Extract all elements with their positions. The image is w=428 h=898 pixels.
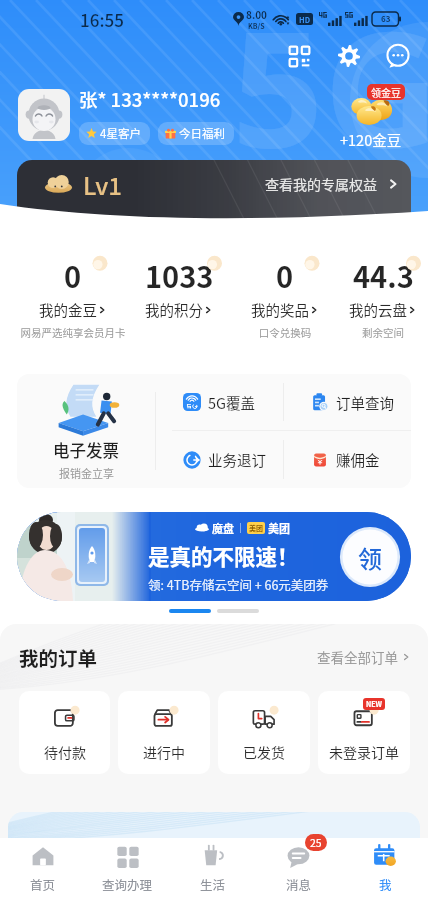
button[interactable]: 查看全部订单: [317, 647, 411, 667]
button[interactable]: 5G覆盖: [156, 374, 283, 430]
staticText: 查看我的专属权益: [265, 174, 377, 194]
button[interactable]: 电子发票: [17, 374, 155, 488]
staticText: 63: [381, 13, 391, 25]
staticText: NEW: [366, 699, 382, 709]
button[interactable]: 0: [20, 254, 126, 340]
staticText: 已发货: [243, 742, 285, 762]
staticText: HD: [299, 14, 311, 25]
button[interactable]: 业务退订: [156, 431, 283, 488]
button[interactable]: 4星客户: [79, 122, 150, 145]
button[interactable]: Settings: [331, 38, 367, 74]
staticText: 我的金豆: [39, 299, 97, 320]
staticText: 首页: [30, 875, 56, 893]
button[interactable]: 赚佣金: [284, 431, 411, 488]
button[interactable]: 待付款: [19, 691, 110, 774]
staticText: 张* 133****0196: [79, 86, 221, 113]
staticText: 25: [310, 835, 322, 850]
staticText: 4星客户: [100, 125, 141, 142]
staticText: 生活: [200, 875, 226, 893]
staticText: 查询办理: [102, 875, 153, 893]
staticText: 业务退订: [208, 449, 266, 470]
staticText: 44.3: [353, 254, 414, 296]
button[interactable]: 1033: [126, 254, 232, 340]
staticText: 进行中: [143, 742, 185, 762]
button[interactable]: Scan QR code: [281, 38, 317, 74]
staticText: 领: 4TB存储云空间 + 66元美团券: [148, 575, 329, 593]
staticText: 查看全部订单: [317, 647, 398, 667]
button[interactable]: 进行中: [118, 691, 210, 774]
staticText: 5G覆盖: [208, 392, 256, 413]
staticText: 剩余空间: [338, 325, 428, 340]
button[interactable]: Profile avatar: [18, 89, 70, 141]
staticText: Lv1: [83, 167, 123, 202]
staticText: 8.00: [246, 7, 267, 21]
button[interactable]: 44.3: [338, 254, 428, 340]
staticText: 0: [64, 254, 82, 296]
staticText: 今日福利: [179, 125, 225, 142]
staticText: KB/S: [248, 21, 265, 31]
staticText: 赚佣金: [336, 449, 380, 470]
staticText: +120金豆: [340, 129, 402, 150]
staticText: 美团: [268, 520, 290, 536]
button[interactable]: NEW: [318, 691, 410, 774]
button[interactable]: 今日福利: [158, 122, 234, 145]
button[interactable]: 首页: [0, 838, 85, 898]
staticText: 美团: [249, 523, 263, 533]
staticText: 领金豆: [371, 85, 401, 99]
staticText: 16:55: [80, 7, 124, 32]
staticText: 魔盘: [212, 520, 234, 536]
staticText: 领: [358, 540, 382, 575]
button[interactable]: 我: [342, 838, 428, 898]
staticText: 报销金立享: [59, 465, 114, 481]
staticText: 电子发票: [53, 438, 119, 462]
staticText: 我的积分: [145, 299, 203, 320]
staticText: 我: [379, 875, 392, 893]
button[interactable]: 魔盘: [17, 512, 411, 601]
staticText: 口令兑换码: [232, 325, 338, 340]
staticText: 待付款: [44, 742, 86, 762]
button[interactable]: Claim offer: [338, 525, 402, 589]
button[interactable]: Lv1: [17, 160, 411, 222]
staticText: 消息: [286, 875, 312, 893]
staticText: 我的云盘: [349, 299, 407, 320]
staticText: 1033: [145, 254, 214, 296]
button[interactable]: Claim gold beans: [328, 80, 414, 150]
staticText: 订单查询: [336, 392, 394, 413]
staticText: 我的奖品: [251, 299, 309, 320]
staticText: 0: [276, 254, 294, 296]
staticText: 我的订单: [19, 643, 98, 671]
staticText: 5G: [232, 0, 428, 194]
staticText: 是真的不限速！: [148, 540, 299, 571]
staticText: 未登录订单: [329, 742, 399, 762]
button[interactable]: 生活: [170, 838, 256, 898]
button[interactable]: 已发货: [218, 691, 310, 774]
button[interactable]: 25: [256, 838, 342, 898]
button[interactable]: Customer service chat: [380, 38, 416, 74]
button[interactable]: 查询办理: [85, 838, 170, 898]
staticText: 网易严选纯享会员月卡: [20, 325, 126, 340]
button[interactable]: 0: [232, 254, 338, 340]
button[interactable]: 订单查询: [284, 374, 411, 430]
